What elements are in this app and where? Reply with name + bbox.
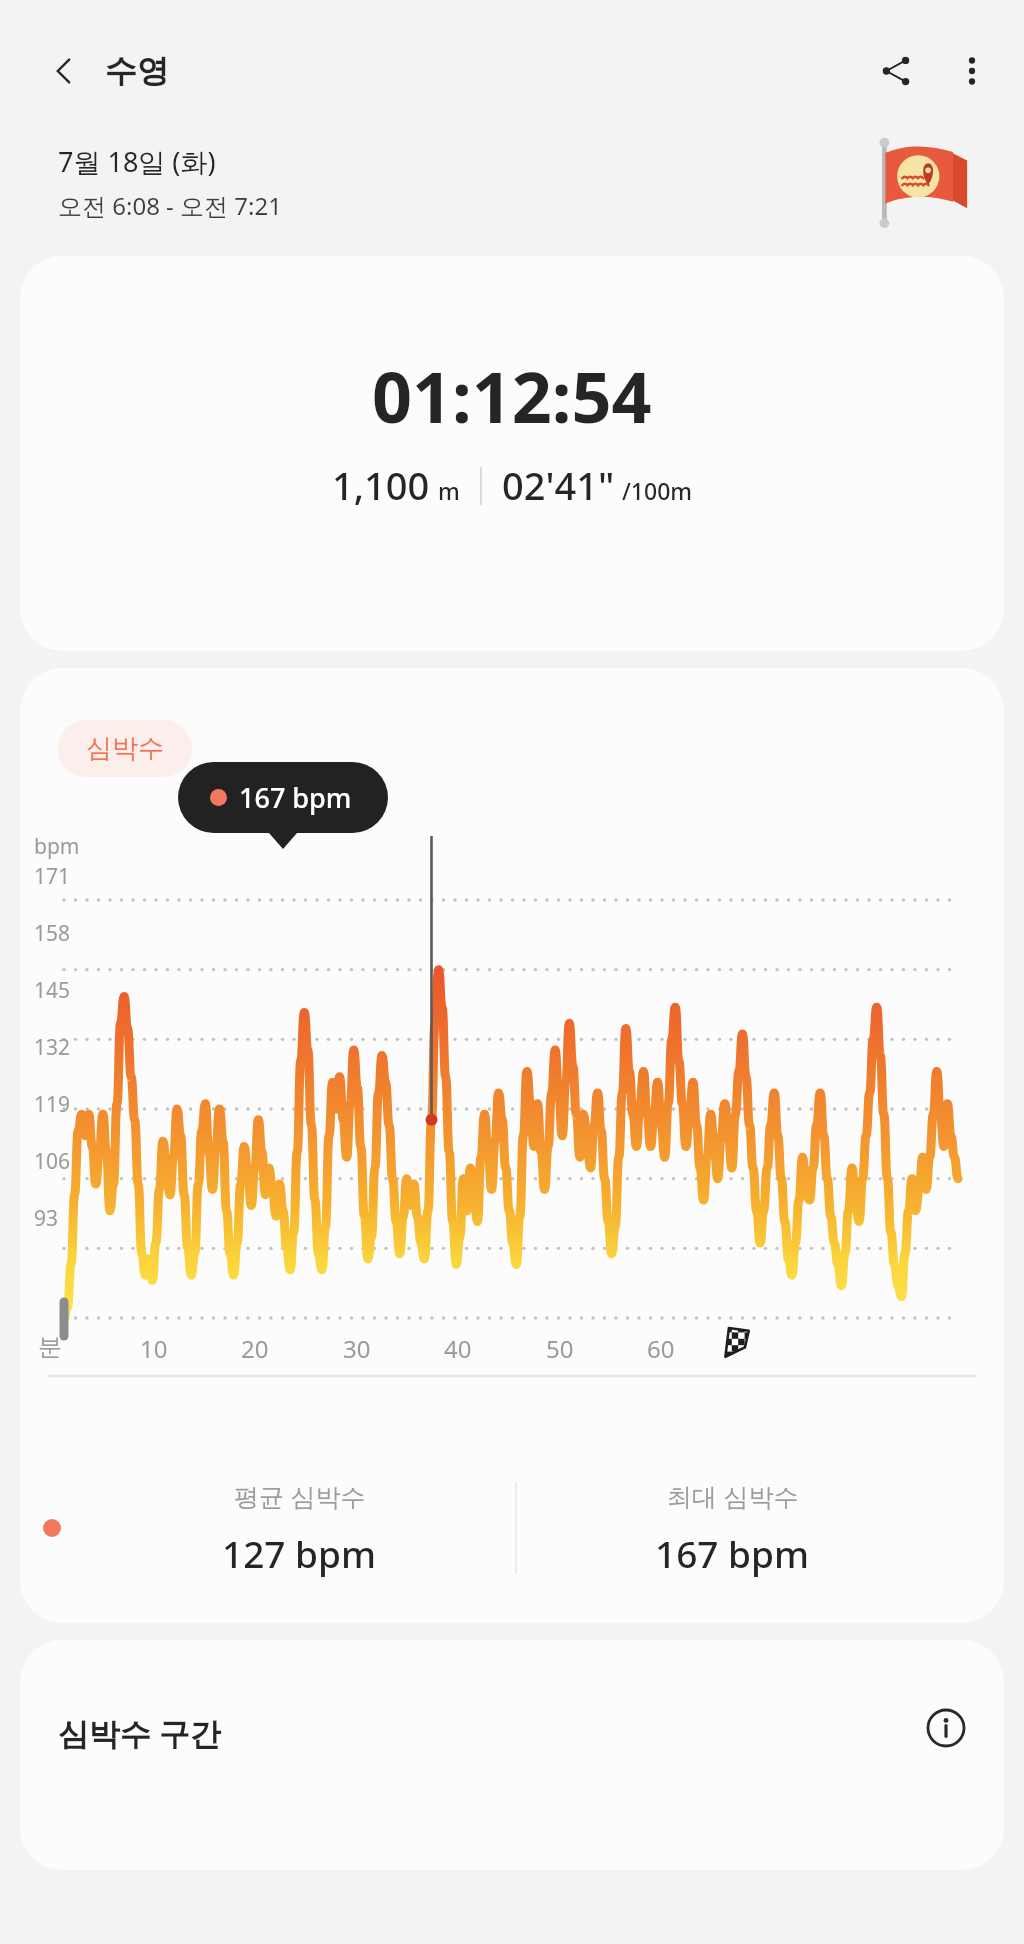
staticText: 60 xyxy=(647,1332,675,1365)
staticText: 167 bpm xyxy=(239,779,352,816)
staticText: 158 xyxy=(34,919,71,948)
staticText: 01:12:54 xyxy=(372,348,652,443)
staticText: 145 xyxy=(34,976,71,1005)
staticText: 02'41" xyxy=(502,459,615,511)
button[interactable]: More options xyxy=(940,39,1004,103)
staticText: 분 xyxy=(38,1332,62,1362)
staticText: 167 bpm xyxy=(655,1528,810,1578)
button[interactable]: Information xyxy=(916,1698,976,1758)
staticText: 106 xyxy=(34,1147,71,1176)
staticText: 20 xyxy=(241,1332,269,1365)
staticText: 119 xyxy=(34,1090,71,1119)
staticText: 평균 심박수 xyxy=(234,1479,366,1513)
staticText: /100m xyxy=(622,475,693,506)
staticText: 심박수 구간 xyxy=(58,1712,222,1754)
staticText: 132 xyxy=(34,1033,71,1062)
button[interactable]: 심박수 xyxy=(58,720,192,777)
staticText: 7월 18일 (화) xyxy=(58,143,216,180)
staticText: 최대 심박수 xyxy=(667,1479,799,1513)
staticText: 93 xyxy=(34,1204,59,1233)
button[interactable]: Back xyxy=(36,43,92,99)
staticText: bpm xyxy=(34,832,80,861)
staticText: m xyxy=(438,475,460,506)
button[interactable]: Share xyxy=(864,39,928,103)
staticText: 171 xyxy=(34,862,71,891)
staticText: 심박수 xyxy=(86,732,164,765)
staticText: 127 bpm xyxy=(222,1528,377,1578)
staticText: 수영 xyxy=(105,51,169,91)
staticText: 1,100 xyxy=(332,459,430,511)
staticText: 오전 6:08 - 오전 7:21 xyxy=(58,189,282,222)
staticText: 40 xyxy=(444,1332,472,1365)
staticText: 50 xyxy=(546,1332,574,1365)
staticText: 30 xyxy=(343,1332,371,1365)
staticText: 10 xyxy=(140,1332,168,1365)
button[interactable]: 01:12:54 xyxy=(20,256,1004,651)
